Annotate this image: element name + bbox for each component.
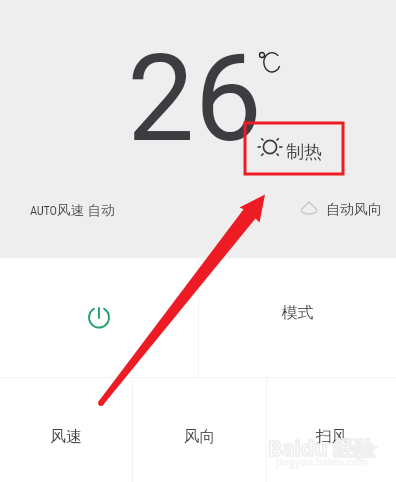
button[interactable] [133,378,266,482]
button[interactable] [267,378,396,482]
button[interactable] [295,194,387,222]
button[interactable] [252,130,328,166]
button[interactable] [199,259,396,377]
button[interactable]: Power [0,259,198,377]
button[interactable] [0,378,132,482]
button[interactable] [22,194,126,222]
